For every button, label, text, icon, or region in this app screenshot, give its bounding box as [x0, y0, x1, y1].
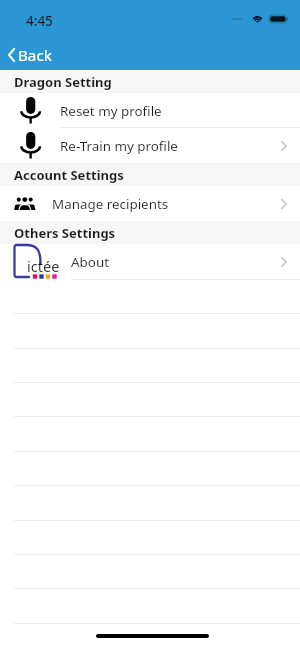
button[interactable]: ictée — [0, 244, 300, 279]
staticText: About — [71, 253, 110, 271]
button[interactable]: Manage recipients — [0, 186, 300, 221]
staticText: Others Settings — [14, 224, 116, 242]
staticText: Dragon Setting — [14, 73, 112, 91]
button[interactable]: Back — [0, 40, 64, 70]
staticText: Re-Train my profile — [60, 137, 178, 155]
staticText: 4:45 — [26, 12, 53, 30]
staticText: Account Settings — [14, 166, 124, 184]
staticText: Reset my profile — [60, 102, 162, 120]
staticText: Back — [18, 45, 52, 66]
button[interactable]: Reset my profile — [0, 93, 300, 128]
button[interactable]: Re-Train my profile — [0, 128, 300, 163]
staticText: Manage recipients — [52, 195, 169, 213]
staticText: ictée — [27, 256, 60, 276]
